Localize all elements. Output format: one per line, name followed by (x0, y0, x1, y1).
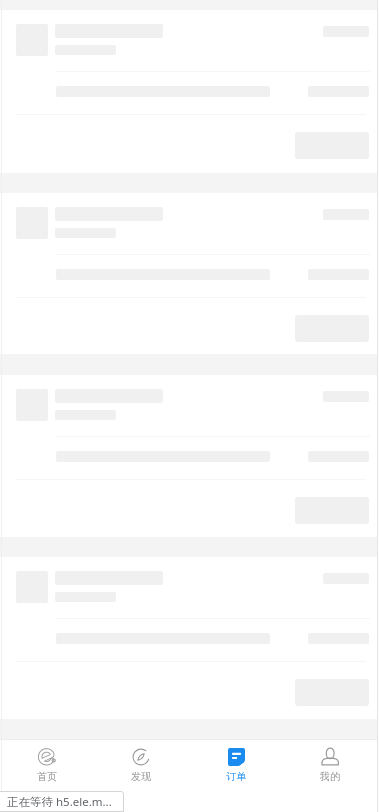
button[interactable] (0, 557, 379, 719)
staticText: 订单 (226, 770, 246, 783)
button[interactable] (0, 193, 379, 354)
button[interactable]: 发现 (94, 739, 188, 812)
button[interactable]: 首页 (0, 739, 94, 812)
button[interactable] (0, 10, 379, 173)
button[interactable]: 我的 (283, 739, 377, 812)
staticText: 首页 (37, 770, 57, 783)
button[interactable]: 订单 (189, 739, 283, 812)
staticText: 发现 (131, 770, 151, 783)
staticText: 我的 (320, 770, 340, 783)
staticText: 正在等待 h5.ele.m... (7, 794, 112, 810)
button[interactable] (0, 375, 379, 537)
